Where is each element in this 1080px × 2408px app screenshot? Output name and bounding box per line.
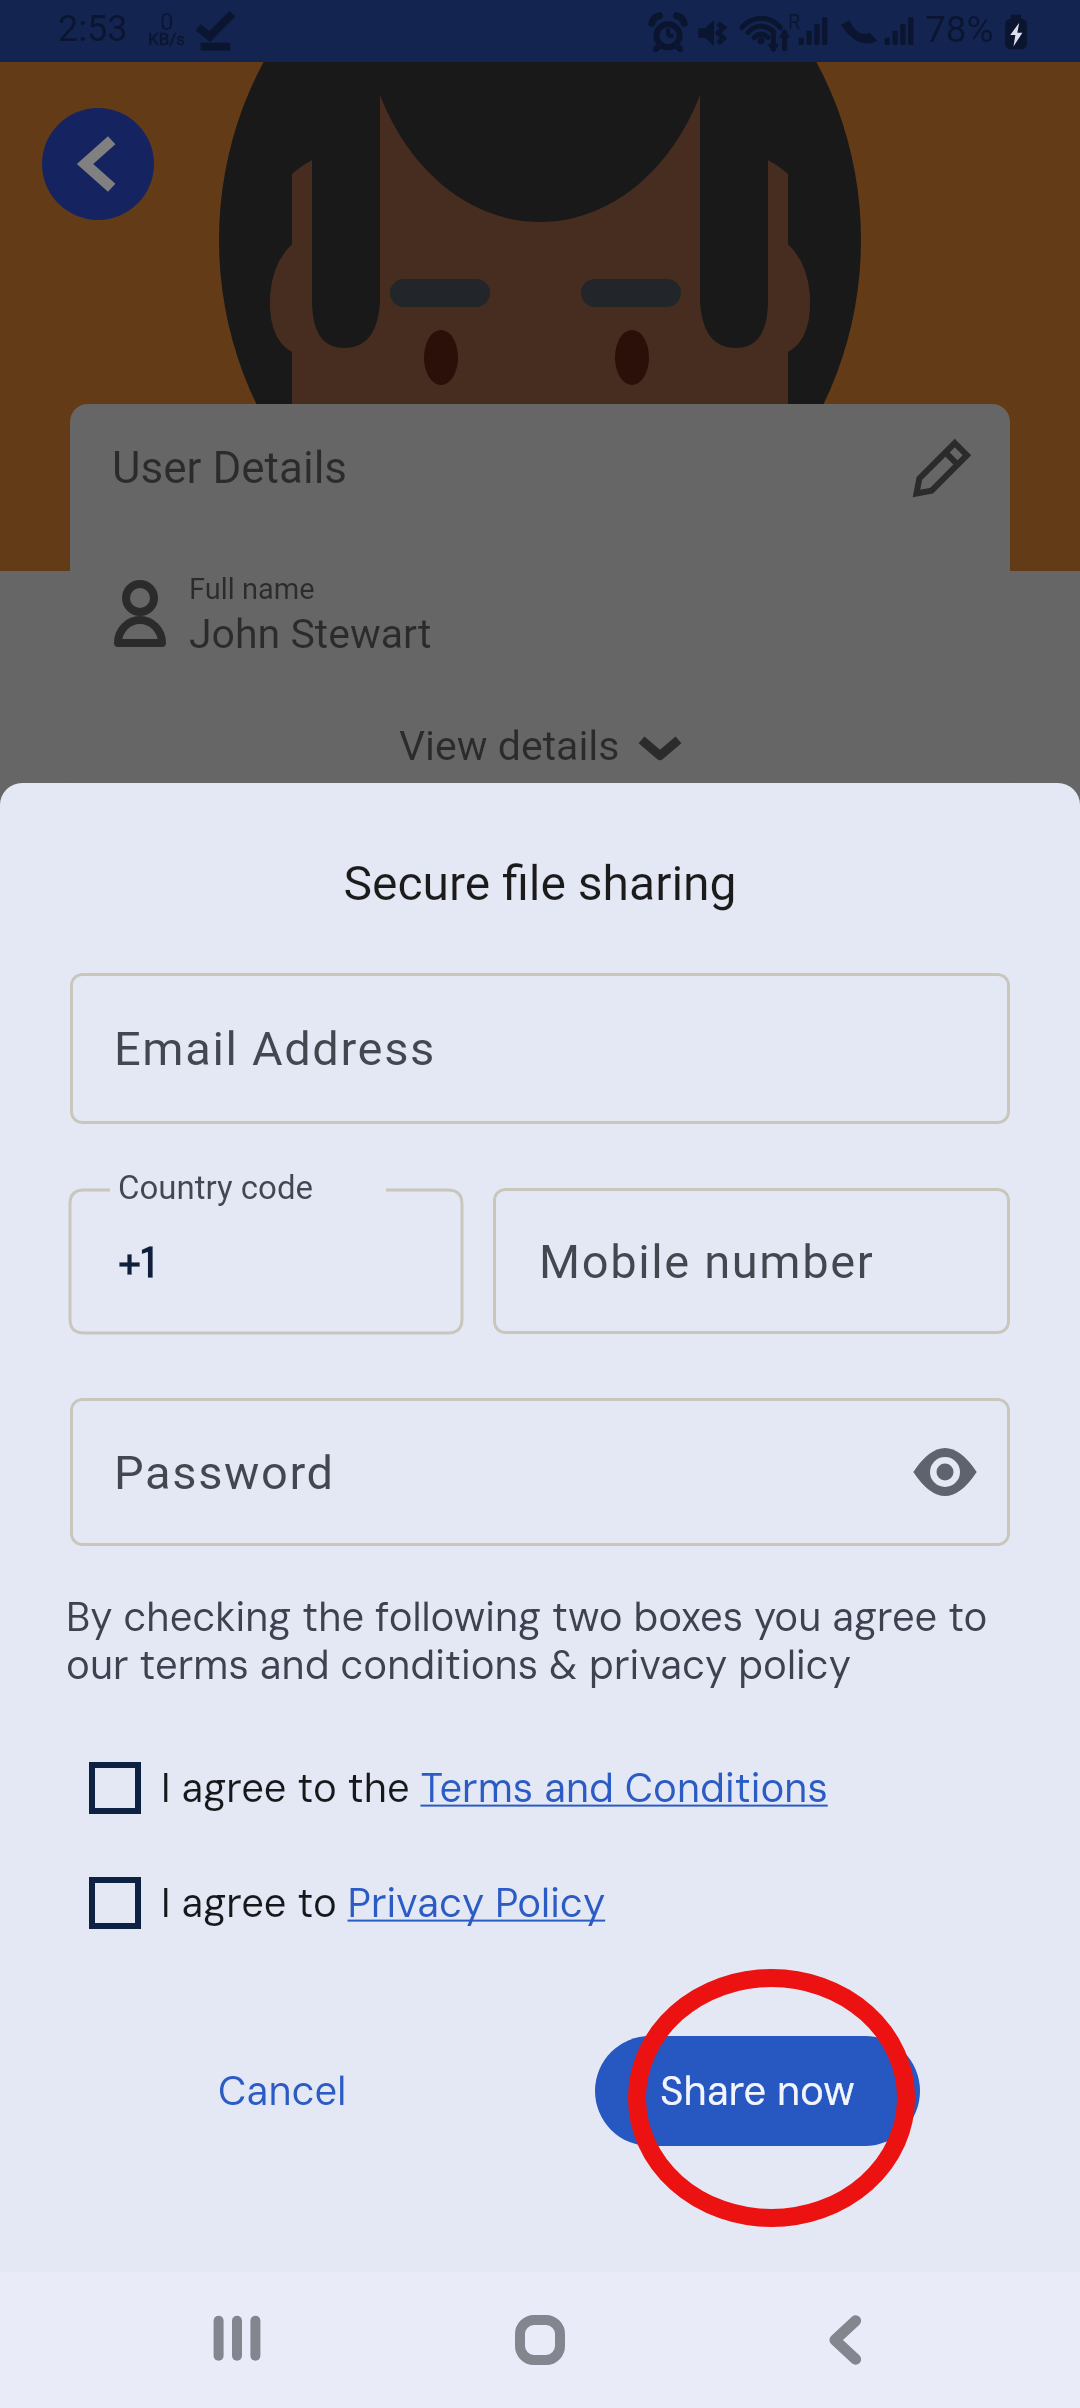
button[interactable]: Password	[70, 1398, 1010, 1546]
staticText: Cancel	[218, 2065, 347, 2117]
staticText: I agree to Privacy Policy	[161, 1877, 606, 1929]
button[interactable]: Show password	[908, 1435, 982, 1509]
staticText: Mobile number	[539, 1234, 875, 1289]
staticText: John Stewart	[189, 610, 432, 658]
staticText: R	[788, 10, 801, 33]
staticText: By checking the following two boxes you …	[66, 1591, 996, 1692]
staticText: +1	[118, 1235, 156, 1290]
staticText: Country code	[118, 1168, 313, 1207]
staticText: View details	[399, 722, 620, 770]
staticText: Share now	[660, 2065, 855, 2117]
staticText: 78%	[925, 8, 994, 51]
button[interactable]: Email Address	[70, 973, 1010, 1124]
button[interactable]: Recent apps	[162, 2272, 312, 2408]
staticText: Secure file sharing	[0, 855, 1080, 911]
button[interactable]: Home	[465, 2272, 615, 2408]
button[interactable]: View details	[70, 706, 1010, 786]
staticText: 2:53	[58, 8, 128, 50]
button[interactable]: I agree to Privacy Policy	[89, 1870, 606, 1936]
staticText: User Details	[112, 442, 348, 494]
staticText: Full name	[189, 572, 315, 606]
staticText: Email Address	[114, 1021, 436, 1076]
button[interactable]: Mobile number	[493, 1188, 1010, 1334]
staticText: KB/s	[148, 29, 186, 49]
staticText: I agree to the Terms and Conditions	[161, 1762, 828, 1814]
button[interactable]: Back	[42, 108, 154, 220]
button[interactable]: I agree to the Terms and Conditions	[89, 1755, 828, 1821]
button[interactable]: Share now	[595, 2036, 920, 2146]
button[interactable]: Cancel	[175, 2036, 390, 2146]
button[interactable]: Country code	[70, 1190, 462, 1333]
button[interactable]: Back	[770, 2272, 920, 2408]
button[interactable]: Edit	[910, 436, 974, 500]
staticText: Password	[114, 1445, 335, 1500]
staticText: 0	[160, 8, 174, 36]
